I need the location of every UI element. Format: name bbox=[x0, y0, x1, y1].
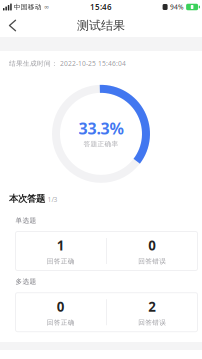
staticText: 答题正确率 bbox=[83, 140, 118, 148]
staticText: 0 bbox=[148, 237, 156, 254]
staticText: 中国移动 bbox=[14, 3, 42, 11]
staticText: ∞ bbox=[44, 3, 50, 11]
staticText: 测试结果 bbox=[77, 18, 125, 33]
staticText: 结果生成时间： bbox=[9, 59, 58, 67]
staticText: 94% bbox=[170, 3, 184, 11]
staticText: 1 bbox=[57, 237, 65, 254]
staticText: 2 bbox=[148, 298, 156, 315]
staticText: 0 bbox=[57, 298, 65, 315]
staticText: 回答正确 bbox=[47, 318, 75, 327]
staticText: 本次答题 bbox=[9, 193, 45, 204]
staticText: 2022-10-25 15:46:04 bbox=[60, 59, 126, 68]
staticText: 单选题 bbox=[15, 216, 36, 224]
staticText: 回答错误 bbox=[138, 318, 166, 327]
staticText: 回答正确 bbox=[47, 257, 75, 265]
staticText: 回答错误 bbox=[138, 257, 166, 265]
staticText: 15:46 bbox=[90, 2, 112, 12]
staticText: 1/3 bbox=[47, 195, 57, 204]
staticText: 33.3% bbox=[78, 118, 123, 139]
button[interactable]: Back bbox=[0, 15, 25, 36]
staticText: 多选题 bbox=[15, 277, 36, 286]
